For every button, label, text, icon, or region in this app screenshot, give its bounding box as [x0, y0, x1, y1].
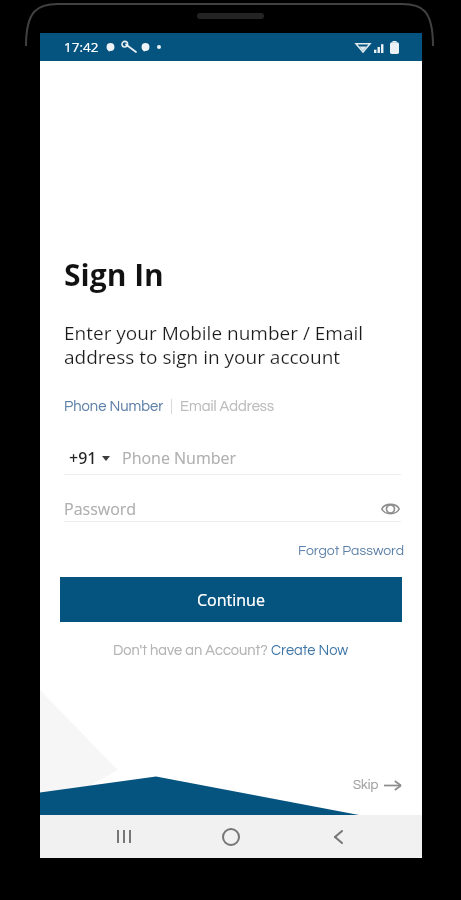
- staticText: Don't have an Account?: [113, 643, 271, 658]
- staticText: Sign In: [64, 254, 164, 295]
- staticText: Enter your Mobile number / Email address…: [64, 320, 364, 369]
- staticText: Phone Number: [122, 447, 236, 469]
- button[interactable]: Back: [307, 815, 369, 858]
- staticText: +91: [69, 447, 97, 469]
- button[interactable]: Skip: [353, 778, 402, 792]
- button[interactable]: Create Now: [271, 643, 349, 658]
- button[interactable]: Email Address: [180, 399, 274, 414]
- button[interactable]: Forgot Password: [298, 544, 405, 558]
- button[interactable]: +91: [64, 442, 401, 475]
- staticText: Continue: [197, 589, 265, 611]
- button[interactable]: Show password: [379, 498, 401, 520]
- staticText: Phone Number: [64, 399, 164, 414]
- staticText: Create Now: [271, 643, 349, 658]
- button[interactable]: Home: [200, 815, 262, 858]
- button[interactable]: Recent apps: [93, 815, 155, 858]
- button[interactable]: Continue: [60, 577, 402, 622]
- staticText: 17:42: [64, 38, 99, 56]
- staticText: Password: [64, 498, 137, 520]
- button[interactable]: Phone Number: [64, 399, 164, 414]
- staticText: Email Address: [180, 399, 274, 414]
- staticText: Forgot Password: [298, 544, 405, 558]
- button[interactable]: Password: [64, 493, 401, 522]
- staticText: Skip: [353, 778, 379, 792]
